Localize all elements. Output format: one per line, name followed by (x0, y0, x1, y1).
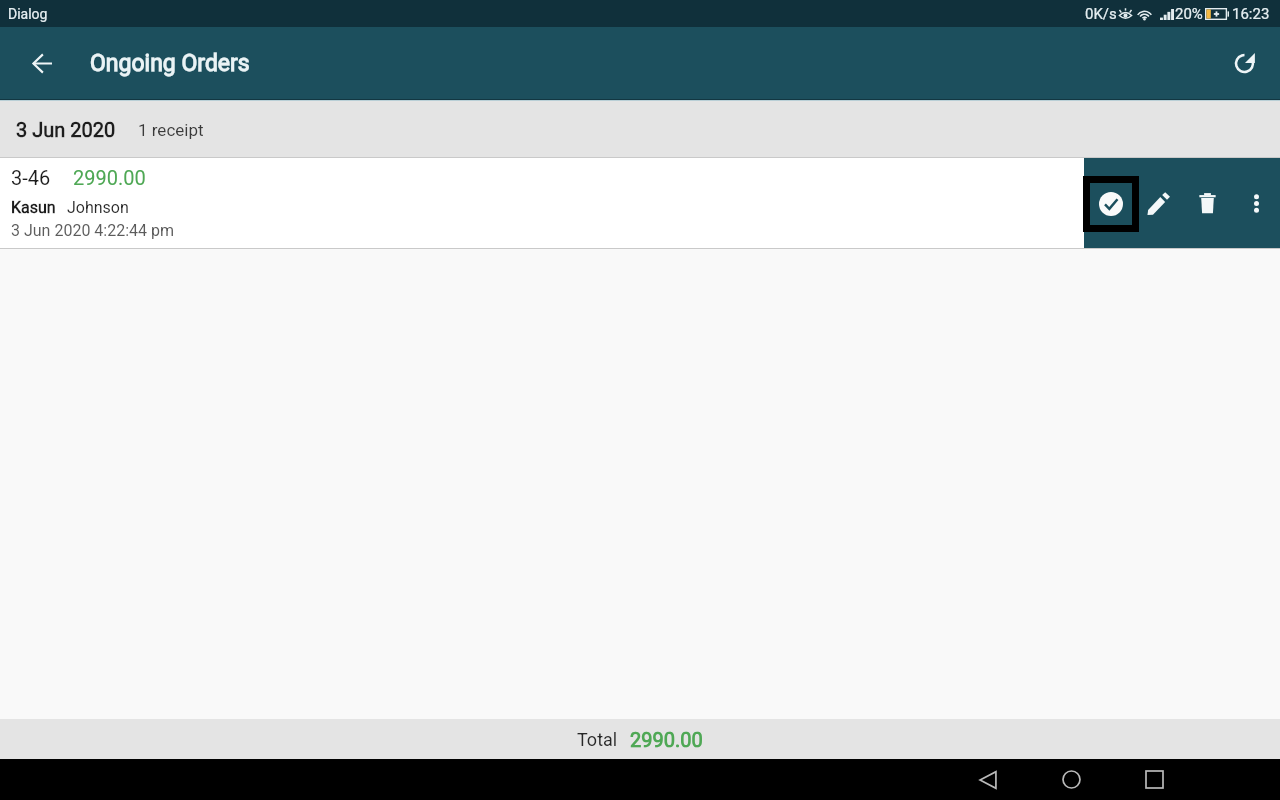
staticText: 3 Jun 2020 (16, 118, 116, 141)
staticText: Total (577, 729, 618, 750)
staticText: 2990.00 (73, 166, 146, 189)
button[interactable]: More options (1228, 175, 1280, 231)
button[interactable]: Back (20, 41, 64, 85)
button[interactable]: Delete order (1179, 175, 1235, 231)
button[interactable]: Home (1041, 759, 1101, 800)
button[interactable]: Mark order complete (1083, 176, 1139, 232)
button[interactable]: Refresh (1222, 41, 1266, 85)
staticText: 16:23 (1232, 5, 1270, 23)
staticText: 20% (1175, 5, 1203, 23)
button[interactable]: Back (958, 759, 1018, 800)
button[interactable]: 3-46 (0, 158, 1084, 248)
staticText: 2990.00 (630, 728, 703, 751)
staticText: 1 receipt (138, 120, 204, 140)
button[interactable]: Recents (1124, 759, 1184, 800)
staticText: 3 Jun 2020 4:22:44 pm (11, 221, 175, 240)
staticText: Johnson (67, 198, 129, 217)
staticText: Kasun (11, 198, 56, 217)
staticText: 3-46 (11, 166, 51, 189)
staticText: Dialog (8, 6, 48, 22)
staticText: Ongoing Orders (90, 50, 250, 77)
staticText: 0K/s (1085, 5, 1117, 23)
button[interactable]: Edit order (1130, 175, 1186, 231)
